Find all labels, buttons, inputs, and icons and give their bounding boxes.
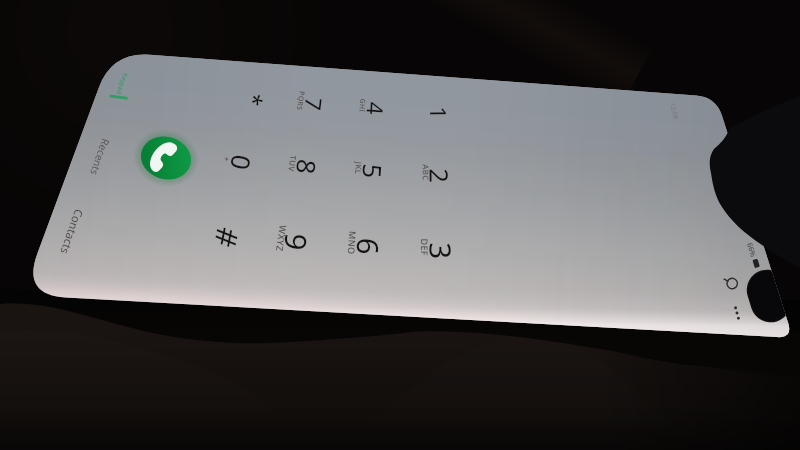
button[interactable]: Phone dialer keypad (0, 0, 800, 450)
